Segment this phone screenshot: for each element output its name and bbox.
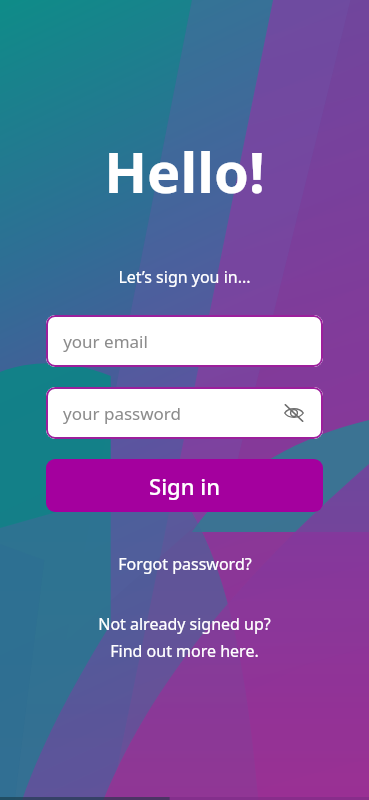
button[interactable]: Not already signed up? [90, 611, 279, 664]
button[interactable]: your email [46, 315, 323, 367]
staticText: Sign in [149, 471, 220, 501]
staticText: Forgot password? [118, 553, 252, 575]
staticText: Find out more here. [110, 640, 259, 662]
button[interactable]: Show password [282, 401, 306, 425]
staticText: your email [63, 330, 148, 353]
button[interactable]: Forgot password? [110, 550, 260, 578]
staticText: Not already signed up? [98, 613, 271, 635]
staticText: Let’s sign you in... [118, 266, 251, 288]
button[interactable]: Sign in [46, 459, 323, 512]
button[interactable]: your password [46, 387, 323, 439]
staticText: Hello! [104, 133, 265, 209]
staticText: your password [63, 402, 181, 425]
